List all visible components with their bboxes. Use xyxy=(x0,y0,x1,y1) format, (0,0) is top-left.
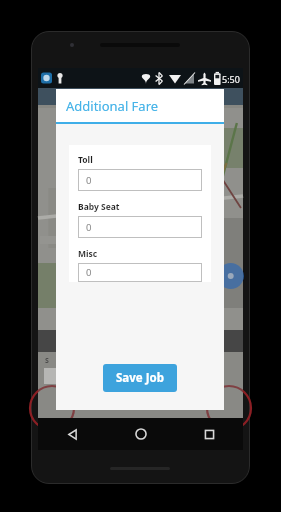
button[interactable]: 0 xyxy=(78,169,202,191)
staticText: Additional Fare xyxy=(66,97,159,115)
staticText: Save Job xyxy=(116,370,164,386)
button[interactable]: Back xyxy=(38,418,107,450)
button[interactable]: Save Job xyxy=(103,364,177,392)
staticText: 0 xyxy=(86,266,92,279)
button[interactable]: 0 xyxy=(78,263,202,282)
staticText: 5:50 xyxy=(222,73,240,85)
button[interactable]: Recent apps xyxy=(175,418,243,450)
staticText: Baby Seat xyxy=(78,201,120,213)
button[interactable]: Home xyxy=(107,418,175,450)
staticText: S xyxy=(45,356,49,366)
staticText: Toll xyxy=(78,154,93,166)
staticText: 0 xyxy=(86,221,92,234)
staticText: 0 xyxy=(86,174,92,187)
button[interactable]: 0 xyxy=(78,216,202,238)
staticText: Misc xyxy=(78,248,98,260)
